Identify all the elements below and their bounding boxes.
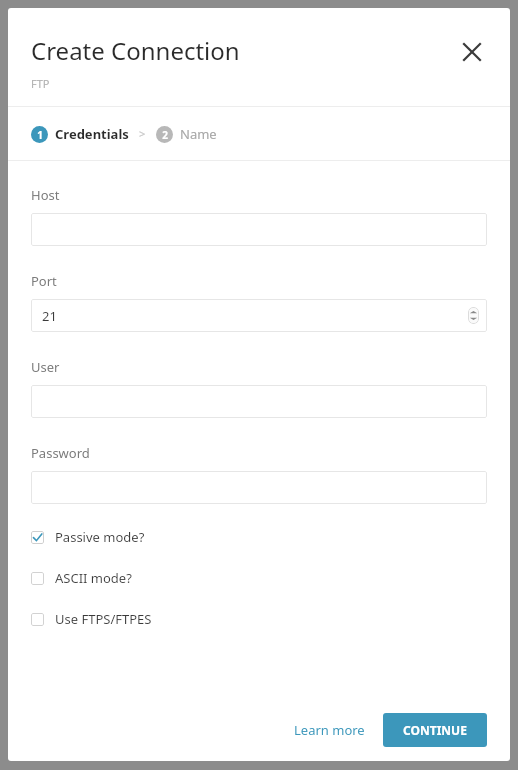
- button[interactable]: 1: [31, 125, 129, 143]
- button[interactable]: [31, 213, 487, 246]
- button[interactable]: [31, 471, 487, 504]
- staticText: Create Connection: [31, 34, 240, 67]
- staticText: Host: [31, 186, 60, 204]
- staticText: Passive mode?: [55, 528, 145, 546]
- staticText: 2: [162, 128, 168, 142]
- staticText: Credentials: [55, 125, 129, 143]
- staticText: Use FTPS/FTPES: [55, 610, 152, 628]
- button[interactable]: 2: [156, 125, 217, 143]
- button[interactable]: Close: [458, 38, 486, 66]
- button[interactable]: ASCII mode?: [31, 569, 487, 587]
- button[interactable]: Use FTPS/FTPES: [31, 610, 487, 628]
- button[interactable]: Passive mode?: [31, 528, 487, 546]
- button[interactable]: 21: [31, 299, 487, 332]
- staticText: Learn more: [294, 721, 365, 739]
- button[interactable]: [31, 385, 487, 418]
- staticText: Name: [180, 125, 217, 143]
- button[interactable]: Increment or decrement port: [468, 307, 479, 324]
- staticText: FTP: [31, 76, 50, 91]
- staticText: ASCII mode?: [55, 569, 132, 587]
- staticText: 1: [37, 128, 43, 142]
- staticText: User: [31, 358, 60, 376]
- staticText: Password: [31, 444, 90, 462]
- button[interactable]: Learn more: [288, 715, 371, 745]
- staticText: 21: [42, 307, 57, 325]
- staticText: CONTINUE: [403, 722, 467, 738]
- staticText: Port: [31, 272, 57, 290]
- button[interactable]: CONTINUE: [383, 713, 487, 747]
- staticText: >: [139, 126, 146, 141]
